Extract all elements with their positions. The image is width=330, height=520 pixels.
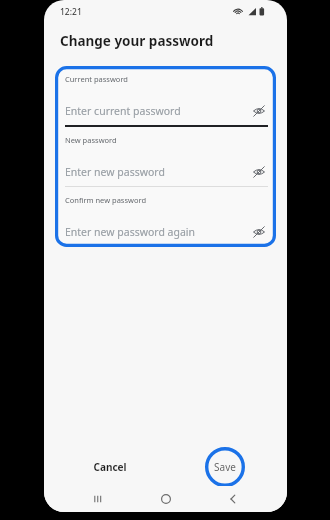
button[interactable]: New password xyxy=(55,127,276,187)
staticText: Change your password xyxy=(60,32,214,50)
staticText: Save xyxy=(214,460,236,474)
button[interactable]: Show password xyxy=(250,163,268,181)
staticText: Enter new password again xyxy=(65,225,250,239)
button[interactable]: Current password xyxy=(55,66,276,127)
button[interactable]: Home xyxy=(152,486,180,512)
button[interactable]: Back xyxy=(219,486,247,512)
button[interactable]: Show password xyxy=(250,223,268,241)
button[interactable]: Show password xyxy=(250,102,268,120)
staticText: Enter current password xyxy=(65,104,250,118)
staticText: 12:21 xyxy=(60,6,82,18)
staticText: Enter new password xyxy=(65,165,250,179)
staticText: Current password xyxy=(65,74,128,84)
staticText: Cancel xyxy=(93,460,127,474)
button[interactable]: Confirm new password xyxy=(55,187,276,247)
button[interactable]: Save xyxy=(205,447,245,487)
button[interactable]: Recent apps xyxy=(84,486,112,512)
staticText: New password xyxy=(65,135,117,145)
button[interactable]: Cancel xyxy=(86,455,134,479)
staticText: Confirm new password xyxy=(65,195,147,205)
